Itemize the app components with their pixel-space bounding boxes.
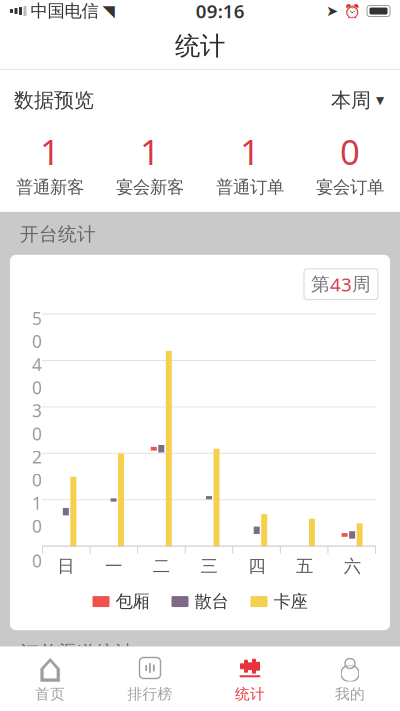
button[interactable]: 本周 — [329, 84, 386, 117]
staticText: 宴会订单 — [316, 177, 384, 198]
staticText: 二 — [153, 556, 170, 577]
staticText: 订单渠道统计 — [20, 641, 134, 664]
staticText: ⌂ — [37, 645, 62, 691]
staticText: 1 — [240, 129, 260, 175]
button[interactable]: 第 — [304, 269, 378, 300]
staticText: 统计 — [235, 685, 265, 703]
staticText: 10 — [32, 491, 42, 537]
staticText: 六 — [344, 556, 361, 577]
staticText: 30 — [32, 399, 42, 445]
staticText: 40 — [32, 353, 42, 399]
staticText: ⏰ — [344, 3, 361, 19]
staticText: 1 — [40, 129, 60, 175]
staticText: 开台统计 — [20, 223, 96, 246]
staticText: 20 — [32, 445, 42, 491]
staticText: 1 — [140, 129, 160, 175]
staticText: 首页 — [35, 685, 65, 703]
staticText: 五 — [296, 556, 313, 577]
staticText: 周 — [352, 273, 371, 296]
staticText: 统计 — [175, 30, 225, 61]
staticText: 数据预览 — [14, 88, 94, 113]
staticText: 0 — [32, 549, 42, 572]
staticText: 本周 — [331, 88, 371, 113]
staticText: 50 — [32, 307, 42, 353]
staticText: 包厢 — [115, 591, 149, 612]
staticText: 0 — [340, 129, 360, 175]
staticText: ➤ — [326, 3, 338, 19]
staticText: 四 — [248, 556, 265, 577]
staticText: 09:16 — [196, 0, 245, 23]
button[interactable]: ⌂ — [0, 654, 100, 705]
staticText: 第 — [311, 273, 330, 296]
staticText: 宴会新客 — [116, 177, 184, 198]
button[interactable]: 统计 — [200, 654, 300, 705]
staticText: 我的 — [335, 685, 365, 703]
staticText: 43 — [330, 272, 352, 297]
staticText: 散台 — [194, 591, 228, 612]
staticText: ▼ — [376, 94, 384, 106]
staticText: 一 — [105, 556, 122, 577]
staticText: 三 — [200, 556, 217, 577]
button[interactable]: 排行榜 — [100, 654, 200, 705]
staticText: ◥ — [102, 2, 114, 20]
button[interactable]: 我的 — [300, 654, 400, 705]
staticText: 排行榜 — [127, 685, 172, 703]
staticText: 日 — [57, 556, 74, 577]
staticText: 卡座 — [273, 591, 307, 612]
staticText: 中国电信 — [30, 0, 98, 22]
staticText: 普通订单 — [216, 177, 284, 198]
staticText: 普通新客 — [16, 177, 84, 198]
